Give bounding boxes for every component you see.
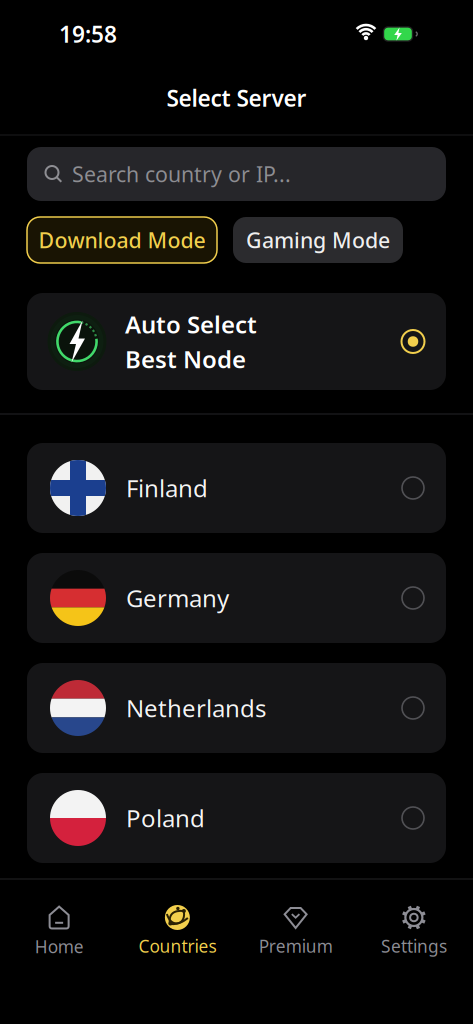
staticText: Best Node [125,343,246,375]
button[interactable]: Finland [27,443,446,533]
staticText: Search country or IP... [72,160,291,188]
staticText: Home [35,935,84,958]
button[interactable]: Search country or IP... [27,147,446,201]
button[interactable]: Settings [355,900,473,962]
staticText: Download Mode [38,226,205,254]
staticText: 19:58 [59,19,117,49]
button[interactable]: Netherlands [27,663,446,753]
staticText: Gaming Mode [246,226,390,254]
staticText: Germany [126,582,229,614]
staticText: Poland [126,802,205,834]
button[interactable]: Poland [27,773,446,863]
button[interactable]: Download Mode [27,217,217,263]
staticText: Premium [259,934,333,957]
staticText: Finland [126,472,208,504]
staticText: Countries [138,934,216,957]
button[interactable]: Countries [118,900,236,962]
button[interactable]: Gaming Mode [233,217,403,263]
button[interactable]: Auto Select [27,293,446,390]
staticText: Settings [381,934,447,957]
button[interactable]: Home [0,900,118,962]
button[interactable]: Premium [236,900,355,962]
button[interactable]: Germany [27,553,446,643]
staticText: Netherlands [126,692,266,724]
staticText: Select Server [166,83,306,113]
staticText: Auto Select [125,308,257,340]
